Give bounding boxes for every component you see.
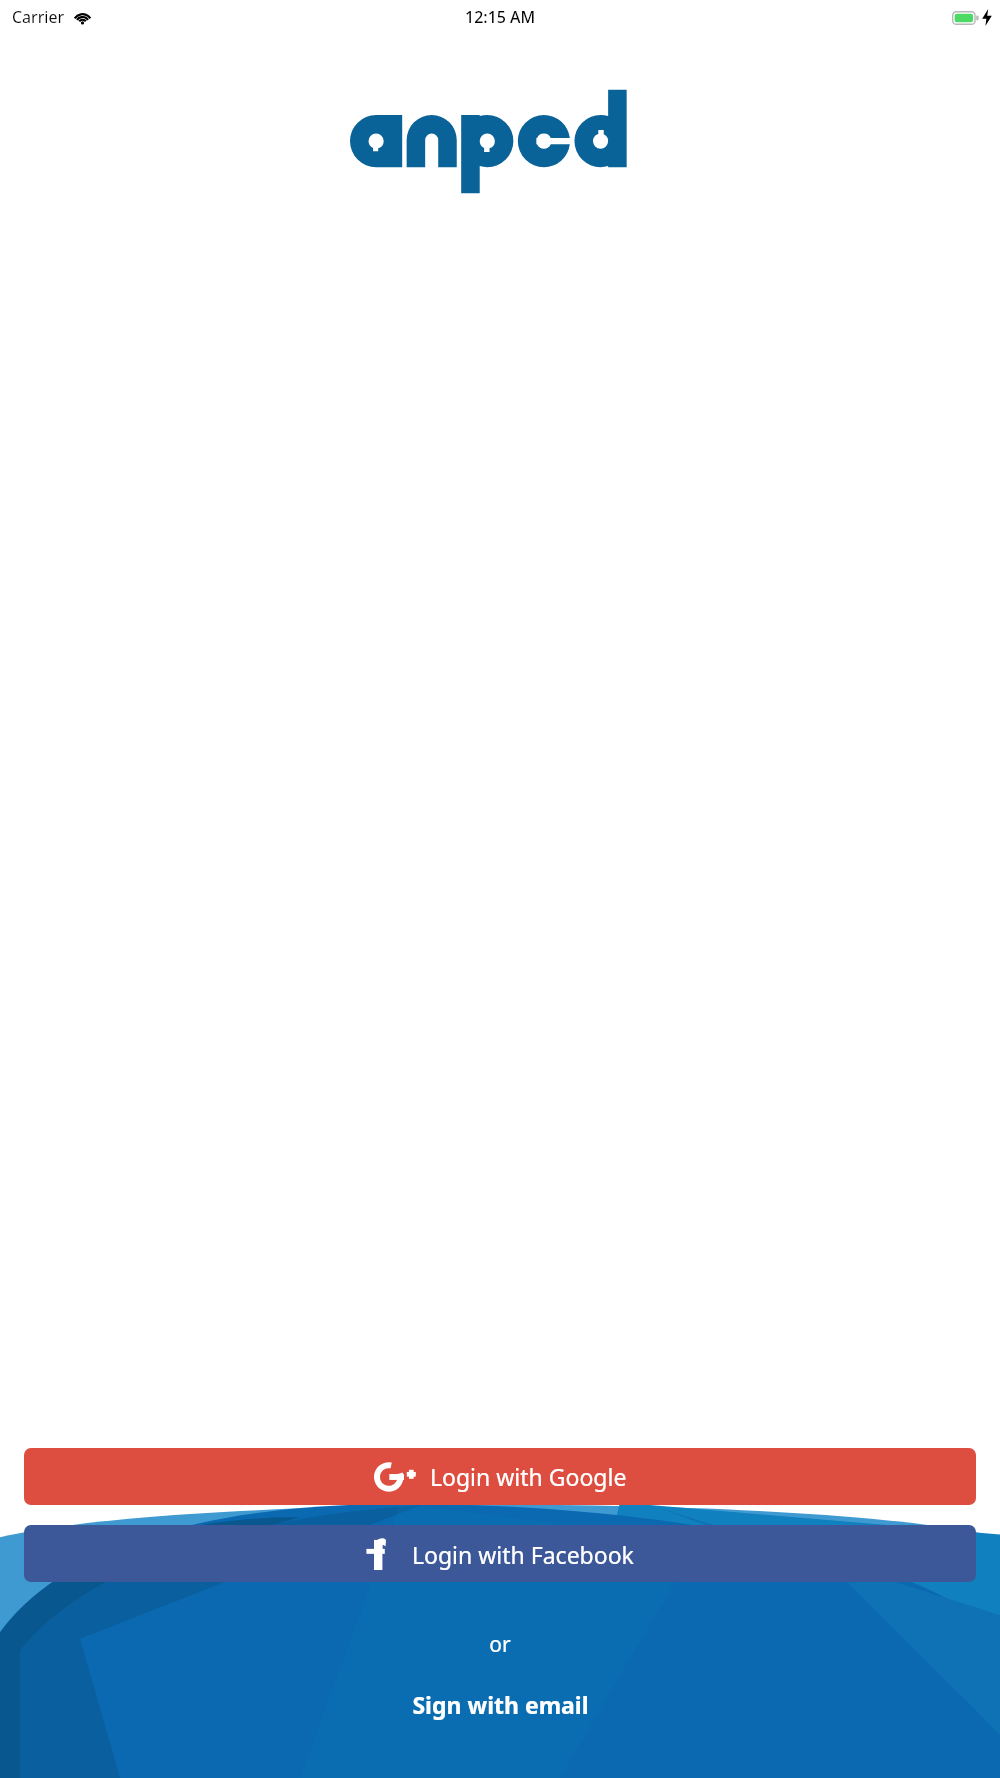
button[interactable]: Login with Google [24,1448,976,1505]
other: anped logo [350,88,650,178]
staticText: 12:15 AM [465,6,536,28]
button[interactable]: Login with Facebook [24,1525,976,1582]
staticText: Carrier [12,6,65,28]
staticText: Login with Facebook [412,1539,634,1570]
button[interactable]: Sign with email [392,1683,609,1726]
staticText: Sign with email [412,1689,589,1720]
staticText: or [489,1630,511,1659]
staticText: Login with Google [430,1461,627,1492]
